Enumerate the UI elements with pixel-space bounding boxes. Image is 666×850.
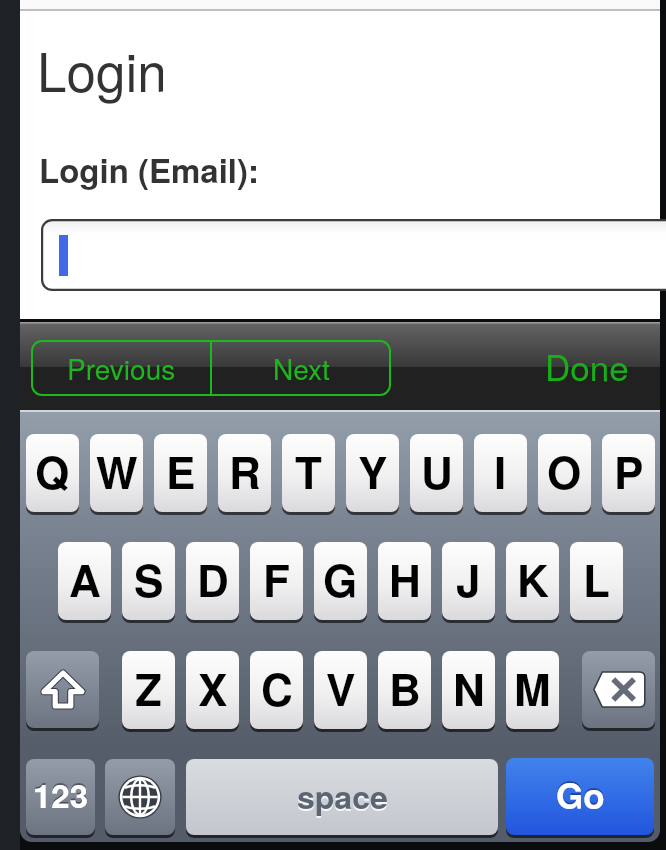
staticText: 123 xyxy=(33,771,89,818)
staticText: S xyxy=(134,547,164,610)
button[interactable]: C xyxy=(250,651,303,729)
staticText: A xyxy=(69,547,101,610)
staticText: H xyxy=(389,547,421,610)
button[interactable]: Next xyxy=(211,340,391,396)
staticText: Q xyxy=(35,439,70,502)
button[interactable]: S xyxy=(122,542,175,620)
button[interactable]: P xyxy=(602,434,655,512)
staticText: R xyxy=(229,439,261,502)
staticText: L xyxy=(583,547,610,610)
button[interactable]: V xyxy=(314,651,367,729)
staticText: C xyxy=(261,656,293,719)
staticText: O xyxy=(547,439,582,502)
button[interactable]: X xyxy=(186,651,239,729)
staticText: V xyxy=(326,656,356,719)
staticText: 123 xyxy=(33,769,89,816)
button[interactable]: Q xyxy=(26,434,79,512)
button[interactable]: U xyxy=(410,434,463,512)
button[interactable]: I xyxy=(474,434,527,512)
button[interactable]: G xyxy=(314,542,367,620)
button[interactable]: Delete xyxy=(582,651,655,728)
button[interactable]: space xyxy=(186,759,498,835)
button[interactable]: K xyxy=(506,542,559,620)
staticText: space xyxy=(297,773,388,819)
button[interactable]: W xyxy=(90,434,143,512)
button[interactable] xyxy=(41,219,666,291)
button[interactable]: Shift xyxy=(26,651,99,728)
staticText: Login xyxy=(37,31,167,107)
button[interactable]: Go xyxy=(506,758,654,835)
staticText: B xyxy=(389,656,421,719)
button[interactable]: A xyxy=(58,542,111,620)
staticText: Y xyxy=(358,439,388,502)
button[interactable]: E xyxy=(154,434,207,512)
staticText: I xyxy=(494,439,507,502)
staticText: Go xyxy=(556,770,605,820)
staticText: N xyxy=(453,656,485,719)
button[interactable]: H xyxy=(378,542,431,620)
staticText: X xyxy=(198,656,228,719)
button[interactable]: Change language xyxy=(105,759,175,835)
staticText: G xyxy=(323,547,358,610)
staticText: Login (Email): xyxy=(39,146,260,193)
staticText: K xyxy=(517,547,549,610)
staticText: Go xyxy=(556,768,605,818)
staticText: T xyxy=(295,439,322,502)
button[interactable]: J xyxy=(442,542,495,620)
button[interactable]: Done xyxy=(532,338,642,394)
staticText: Previous xyxy=(67,348,176,388)
staticText: J xyxy=(456,547,481,610)
staticText: F xyxy=(263,547,290,610)
staticText: Done xyxy=(545,341,629,391)
button[interactable]: T xyxy=(282,434,335,512)
button[interactable]: D xyxy=(186,542,239,620)
staticText: Z xyxy=(135,656,162,719)
button[interactable]: F xyxy=(250,542,303,620)
staticText: D xyxy=(197,547,229,610)
button[interactable]: O xyxy=(538,434,591,512)
staticText: M xyxy=(514,656,551,719)
staticText: W xyxy=(96,439,138,502)
button[interactable]: Numbers xyxy=(26,759,95,835)
staticText: U xyxy=(421,439,453,502)
button[interactable]: L xyxy=(570,542,623,620)
button[interactable]: Previous xyxy=(31,340,211,396)
button[interactable]: Y xyxy=(346,434,399,512)
button[interactable]: N xyxy=(442,651,495,729)
button[interactable]: B xyxy=(378,651,431,729)
staticText: P xyxy=(614,439,644,502)
staticText: space xyxy=(297,775,388,821)
button[interactable]: R xyxy=(218,434,271,512)
staticText: Next xyxy=(273,348,330,388)
button[interactable]: Z xyxy=(122,651,175,729)
button[interactable]: M xyxy=(506,651,559,729)
staticText: E xyxy=(166,439,196,502)
